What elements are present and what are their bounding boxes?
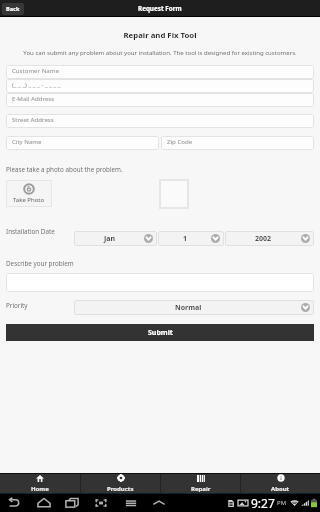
other: Expand	[151, 495, 167, 511]
button[interactable]: Submit	[6, 324, 314, 341]
staticText: E-Mail Address	[12, 94, 55, 102]
staticText: Street Address	[12, 115, 54, 123]
staticText: Normal	[175, 303, 202, 313]
staticText: Customer Name	[12, 66, 59, 74]
button[interactable]: 2002	[225, 231, 314, 246]
other: Back	[6, 495, 22, 511]
button[interactable]	[6, 273, 314, 292]
other: Screenshot	[93, 495, 109, 511]
button[interactable]: Repair	[161, 474, 240, 493]
staticText: Describe your problem	[6, 259, 74, 268]
button[interactable]: City Name	[6, 136, 159, 150]
staticText: Home	[31, 485, 49, 493]
button[interactable]: About	[241, 474, 320, 493]
button[interactable]: (_ _ _) _ _ _ - _ _ _ _	[6, 79, 314, 93]
other: Recents	[64, 495, 80, 511]
button[interactable]: Normal	[74, 300, 314, 315]
button[interactable]: Home	[0, 474, 80, 493]
button[interactable]: Street Address	[6, 114, 314, 128]
staticText: Please take a photo about the problem.	[6, 165, 123, 174]
staticText: 2002	[255, 234, 272, 244]
other: Home	[36, 495, 52, 511]
staticText: Take Photo	[13, 196, 45, 204]
button[interactable]: Zip Code	[161, 136, 314, 150]
button[interactable]: E-Mail Address	[6, 93, 314, 107]
button[interactable]: Products	[81, 474, 160, 493]
staticText: You can submit any problem about your in…	[0, 49, 320, 57]
button[interactable]: Jan	[74, 231, 157, 246]
staticText: Repair	[191, 485, 211, 493]
staticText: Jan	[104, 234, 116, 244]
staticText: 1	[183, 234, 188, 244]
staticText: Request Form	[138, 4, 182, 13]
button[interactable]: Customer Name	[6, 65, 314, 79]
button[interactable]: Back	[2, 3, 24, 15]
staticText: Products	[107, 485, 134, 493]
staticText: Zip Code	[167, 137, 193, 145]
staticText: Installation Date	[6, 227, 55, 236]
other: Menu	[123, 495, 139, 511]
staticText: Repair and Fix Tool	[0, 30, 320, 41]
staticText: PM	[277, 499, 287, 507]
staticText: About	[271, 485, 290, 493]
button[interactable]: 1	[158, 231, 224, 246]
staticText: Submit	[148, 328, 173, 338]
staticText: Priority	[6, 301, 28, 310]
staticText: City Name	[12, 137, 42, 145]
staticText: 9:27	[251, 495, 275, 511]
button[interactable]: Take Photo	[6, 180, 52, 207]
staticText: (_ _ _) _ _ _ - _ _ _ _	[12, 80, 61, 88]
staticText: Back	[6, 5, 20, 13]
